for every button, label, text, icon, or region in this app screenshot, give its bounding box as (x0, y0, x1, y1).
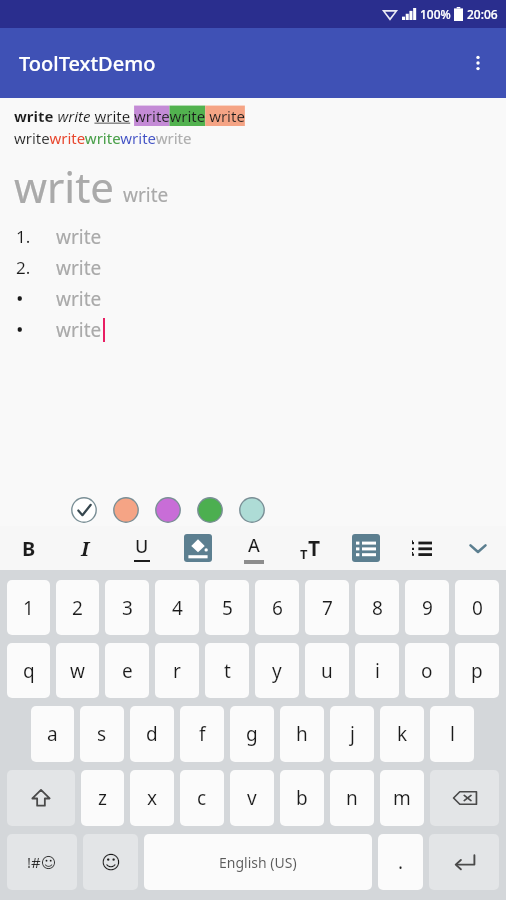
button[interactable]: 8 (355, 580, 399, 635)
staticText: U (135, 534, 149, 559)
button[interactable]: p (455, 643, 499, 698)
button[interactable]: 4 (155, 580, 199, 635)
button[interactable]: Italic (57, 526, 114, 570)
staticText: English (US) (219, 853, 297, 872)
staticText: I (81, 535, 90, 562)
button[interactable]: Colour swatch (238, 496, 266, 524)
staticText: k (397, 721, 408, 747)
button[interactable]: j (330, 706, 374, 762)
staticText: write (123, 182, 169, 208)
button[interactable]: b (280, 770, 324, 826)
staticText: 8 (372, 595, 383, 621)
button[interactable]: Emoji (83, 834, 138, 890)
staticText: b (296, 785, 308, 811)
button[interactable]: Colour swatch (112, 496, 140, 524)
staticText: t (224, 658, 231, 684)
button[interactable]: f (180, 706, 224, 762)
button[interactable]: Colour swatch (196, 496, 224, 524)
staticText: A (248, 533, 260, 558)
staticText: o (421, 658, 433, 684)
staticText: ToolTextDemo (19, 50, 156, 77)
button[interactable]: Highlight colour (170, 526, 226, 570)
button[interactable]: 5 (205, 580, 249, 635)
button[interactable]: Backspace (430, 770, 499, 826)
button[interactable]: Shift (7, 770, 75, 826)
button[interactable]: s (80, 706, 124, 762)
staticText: g (246, 721, 258, 747)
button[interactable]: v (230, 770, 274, 826)
button[interactable]: 6 (255, 580, 299, 635)
staticText: p (471, 658, 483, 684)
staticText: writewritewritewritewrite (14, 128, 192, 148)
button[interactable]: Text size (282, 526, 338, 570)
staticText: s (97, 721, 107, 747)
button[interactable]: Symbols (7, 834, 77, 890)
staticText: write (56, 286, 102, 312)
staticText: 1. (16, 225, 31, 248)
button[interactable]: m (380, 770, 424, 826)
button[interactable]: Colour swatch (154, 496, 182, 524)
button[interactable]: w (56, 643, 99, 698)
button[interactable]: r (155, 643, 199, 698)
button[interactable]: q (7, 643, 50, 698)
button[interactable]: n (330, 770, 374, 826)
staticText: i (375, 658, 380, 684)
button[interactable]: 2 (56, 580, 99, 635)
button[interactable]: Numbered list (394, 526, 450, 570)
button[interactable]: 7 (305, 580, 349, 635)
button[interactable]: . (378, 834, 423, 890)
staticText: 2. (16, 256, 31, 279)
button[interactable]: h (280, 706, 324, 762)
staticText: 6 (272, 595, 283, 621)
button[interactable]: i (355, 643, 399, 698)
staticText: 0 (472, 595, 483, 621)
button[interactable]: c (180, 770, 224, 826)
button[interactable]: Colour swatch (70, 496, 98, 524)
staticText: 5 (222, 595, 233, 621)
staticText: write (56, 317, 102, 343)
button[interactable]: 1 (7, 580, 50, 635)
button[interactable]: English (US) (144, 834, 372, 890)
staticText: u (321, 658, 333, 684)
staticText: write (56, 224, 102, 250)
button[interactable]: Bold (0, 526, 57, 570)
staticText: 100% (420, 6, 451, 22)
staticText: write (14, 158, 115, 215)
staticText: B (22, 535, 36, 562)
button[interactable]: l (430, 706, 474, 762)
staticText: T (300, 545, 308, 563)
button[interactable]: z (81, 770, 124, 826)
button[interactable]: 9 (405, 580, 449, 635)
button[interactable]: More options (456, 41, 500, 85)
button[interactable]: Bulleted list (338, 526, 394, 570)
staticText: write write write writewrite write (14, 106, 249, 126)
staticText: y (272, 658, 282, 684)
button[interactable]: Underline (114, 526, 170, 570)
staticText: • (16, 316, 24, 343)
button[interactable]: k (380, 706, 424, 762)
button[interactable]: Text colour (226, 526, 282, 570)
button[interactable]: Enter (429, 834, 499, 890)
staticText: e (122, 658, 133, 684)
button[interactable]: y (255, 643, 299, 698)
button[interactable]: x (130, 770, 174, 826)
button[interactable]: t (205, 643, 249, 698)
staticText: w (70, 658, 85, 684)
button[interactable]: 0 (455, 580, 499, 635)
staticText: x (147, 785, 158, 811)
button[interactable]: a (31, 706, 74, 762)
button[interactable]: 3 (105, 580, 149, 635)
button[interactable]: e (105, 643, 149, 698)
button[interactable]: u (305, 643, 349, 698)
button[interactable]: g (230, 706, 274, 762)
staticText: T (308, 534, 321, 563)
staticText: l (450, 721, 455, 747)
button[interactable]: d (130, 706, 174, 762)
button[interactable]: Collapse (450, 526, 506, 570)
staticText: f (199, 721, 206, 747)
staticText: 2 (72, 595, 83, 621)
staticText: ☺ (101, 851, 121, 873)
button[interactable]: o (405, 643, 449, 698)
staticText: 1 (23, 595, 34, 621)
staticText: c (197, 785, 207, 811)
